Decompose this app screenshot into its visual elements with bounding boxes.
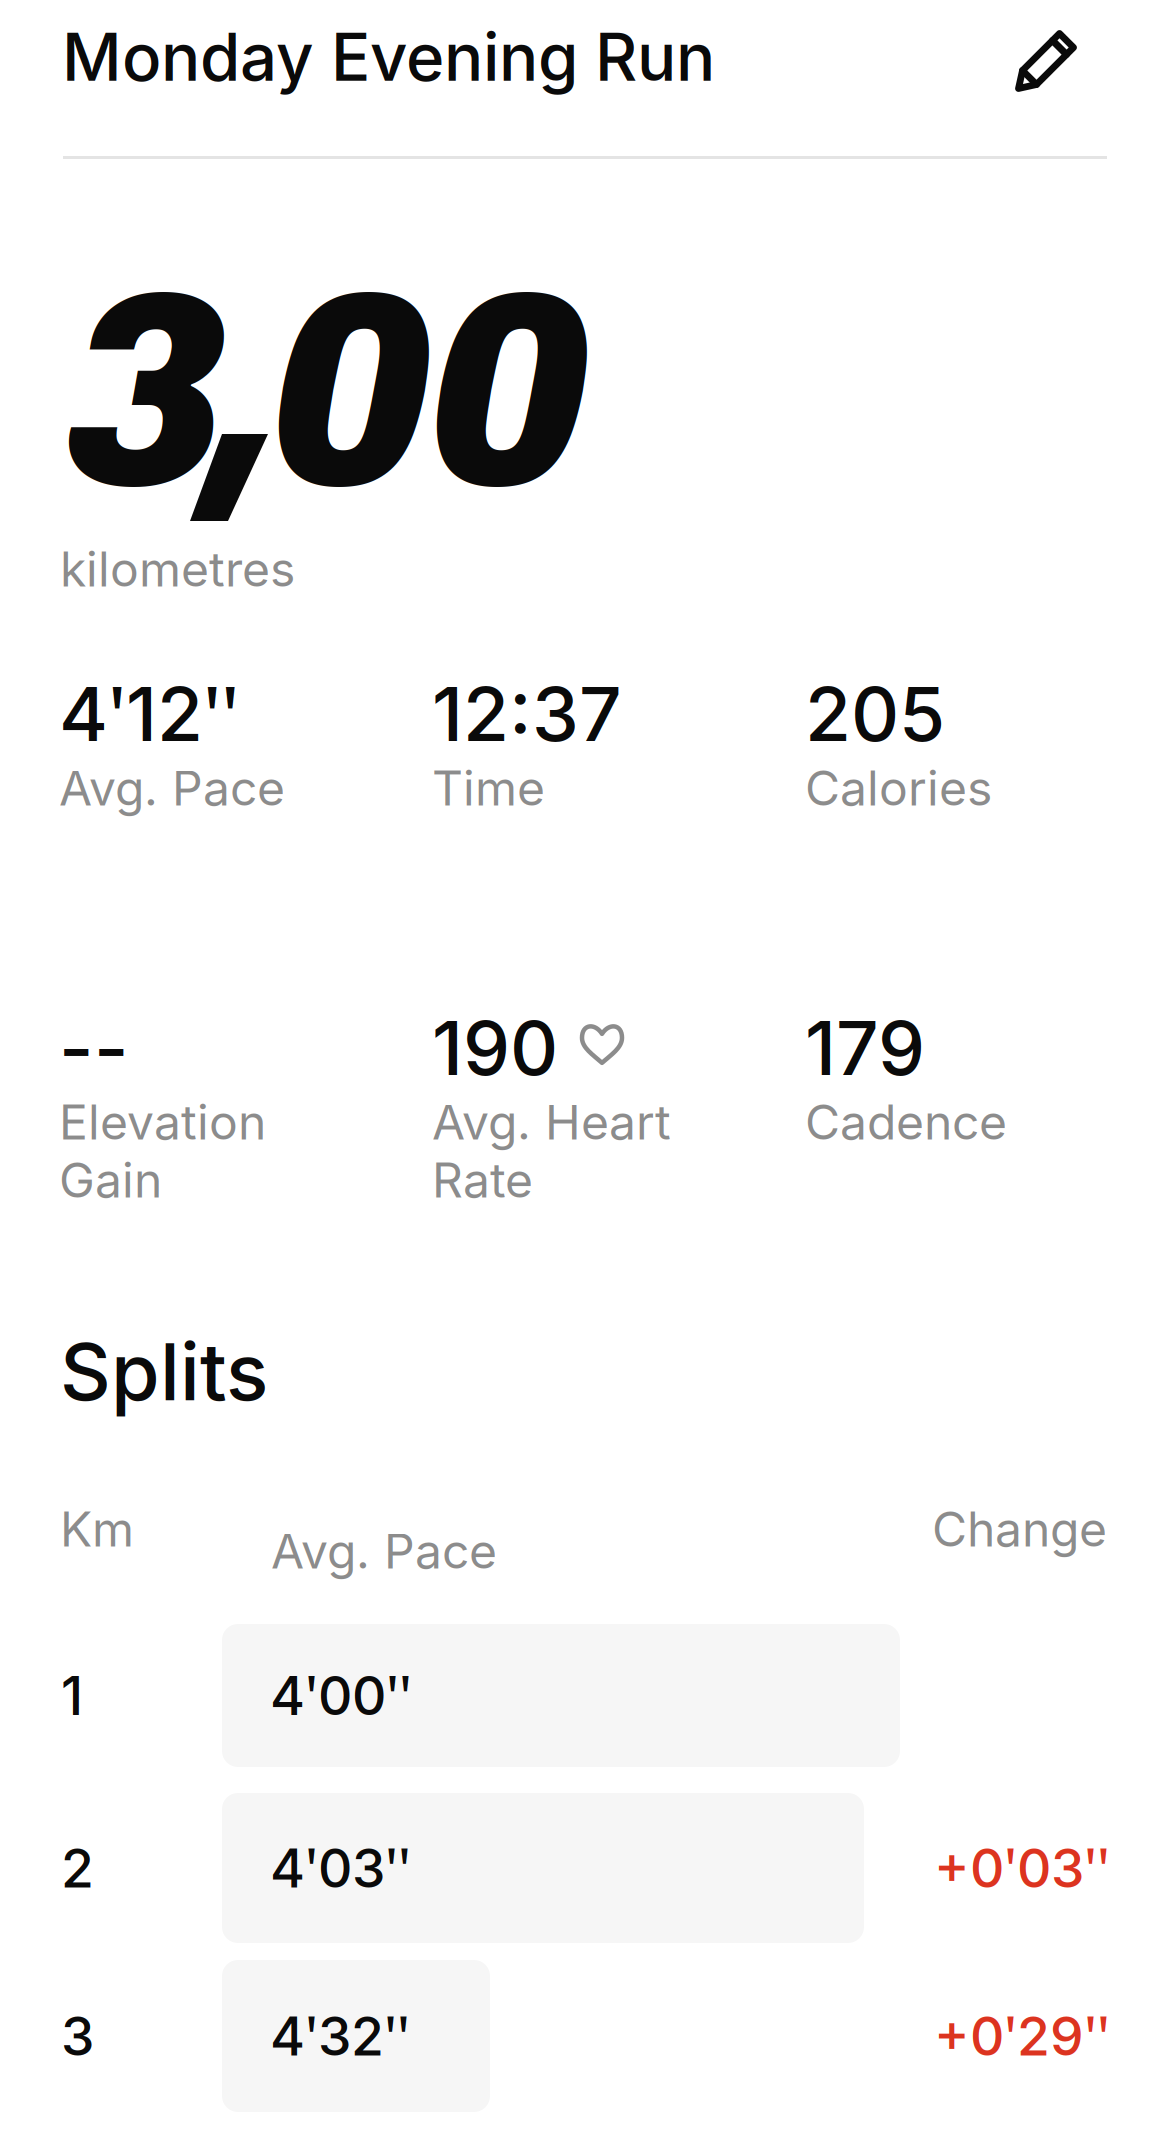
staticText: kilometres: [60, 540, 295, 598]
button[interactable]: 2: [0, 0, 1170, 2136]
staticText: 1: [61, 1663, 83, 1728]
staticText: 205: [805, 669, 945, 759]
staticText: 190: [432, 1003, 558, 1093]
staticText: Monday Evening Run: [62, 17, 715, 96]
staticText: Gain: [59, 1151, 162, 1209]
staticText: +0ʹ29ʺ: [934, 2004, 1110, 2068]
staticText: 4ʹ00ʺ: [270, 1663, 412, 1728]
staticText: Avg. Heart: [432, 1093, 671, 1151]
staticText: 4ʹ03ʺ: [270, 1836, 411, 1900]
staticText: Avg. Pace: [271, 1522, 497, 1580]
staticText: 0: [269, 244, 431, 541]
staticText: Elevation: [59, 1093, 266, 1151]
staticText: 12:37: [432, 669, 622, 759]
staticText: 179: [805, 1003, 925, 1093]
staticText: Rate: [432, 1151, 533, 1209]
staticText: Cadence: [805, 1093, 1007, 1151]
staticText: Change: [932, 1500, 1107, 1558]
staticText: Time: [432, 759, 545, 817]
staticText: 2: [61, 1836, 94, 1900]
staticText: +0ʹ03ʺ: [934, 1836, 1110, 1900]
staticText: Km: [60, 1500, 134, 1558]
button[interactable]: 3: [0, 0, 1170, 2136]
staticText: 3: [61, 2004, 94, 2068]
staticText: Splits: [60, 1324, 268, 1419]
staticText: 4ʹ12ʺ: [59, 669, 239, 759]
button[interactable]: 1: [0, 0, 1170, 2136]
staticText: 3: [64, 244, 225, 541]
staticText: Avg. Pace: [59, 759, 285, 817]
staticText: 0: [427, 244, 589, 541]
staticText: --: [59, 1003, 129, 1093]
staticText: Calories: [805, 759, 992, 817]
staticText: 4ʹ32ʺ: [270, 2004, 410, 2068]
button[interactable]: Edit workout name: [981, 14, 1111, 110]
